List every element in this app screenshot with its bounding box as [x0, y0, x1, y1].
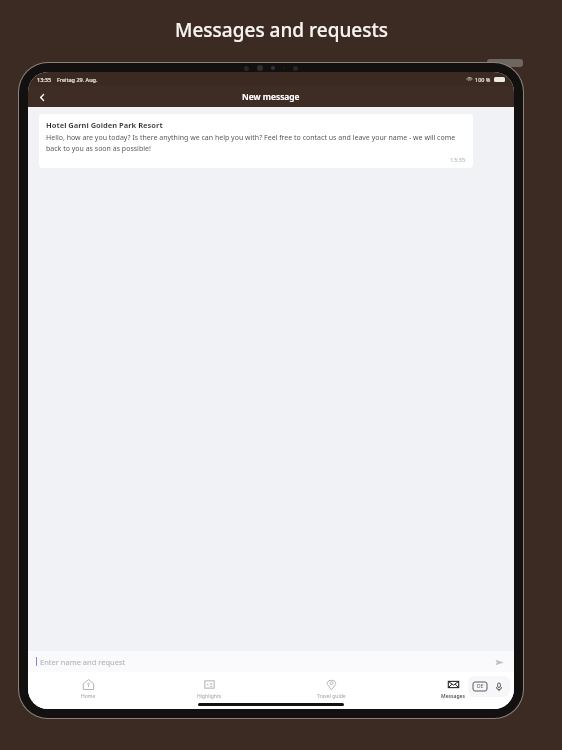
button[interactable]: Home: [28, 676, 149, 702]
staticText: Home: [81, 693, 96, 700]
button[interactable]: Send: [492, 655, 506, 669]
staticText: Messages and requests: [175, 17, 388, 43]
button[interactable]: Hotel Garni Golden Park Resort: [39, 114, 473, 168]
staticText: New message: [242, 91, 300, 103]
button[interactable]: Back: [32, 87, 52, 107]
button[interactable]: Voice input: [493, 681, 505, 693]
staticText: Highlights: [197, 693, 222, 700]
staticText: Travel guide: [317, 693, 346, 700]
button[interactable]: Travel guide: [270, 676, 392, 702]
staticText: Messages: [441, 693, 465, 700]
staticText: Freitag 29. Aug.: [57, 76, 98, 83]
button[interactable]: Enter name and request: [28, 651, 514, 672]
staticText: 13:35: [37, 76, 52, 83]
button[interactable]: Messages: [392, 676, 514, 702]
staticText: DE: [477, 683, 484, 690]
staticText: Hotel Garni Golden Park Resort: [46, 120, 163, 130]
button[interactable]: Language DE: [473, 682, 487, 691]
staticText: Hello, how are you today? Is there anyth…: [46, 133, 466, 153]
staticText: Enter name and request: [40, 657, 126, 667]
button[interactable]: Highlights: [149, 676, 270, 702]
staticText: 13:35: [450, 156, 466, 164]
staticText: 100 %: [475, 76, 491, 83]
